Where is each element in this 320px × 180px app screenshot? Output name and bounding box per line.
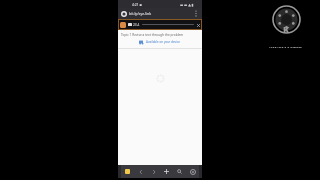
button[interactable]: Forward [147,165,160,178]
button[interactable]: Close [196,23,200,27]
staticText: KINEMASTER [269,45,303,48]
button[interactable]: Back [134,165,147,178]
staticText: ▬ ▬ ▲ ▮ [180,2,194,7]
staticText: Topic 1 Revise a text through the proble… [121,33,199,37]
staticText: bit.ly/xyz-link [129,11,152,16]
staticText: 4:21 ▪ [132,2,142,7]
button[interactable]: More options [193,9,199,18]
button[interactable]: Menu [186,165,199,178]
button[interactable]: Account [121,11,127,17]
button[interactable]: Search [173,165,186,178]
staticText: 23.4 [133,23,140,27]
button[interactable]: New tab [160,165,173,178]
button[interactable]: Tabs [121,165,134,178]
staticText: K [283,23,290,35]
staticText: Available on your device [146,40,181,44]
button[interactable]: Available on your device [118,38,202,46]
button[interactable]: 23.4 [118,19,202,30]
